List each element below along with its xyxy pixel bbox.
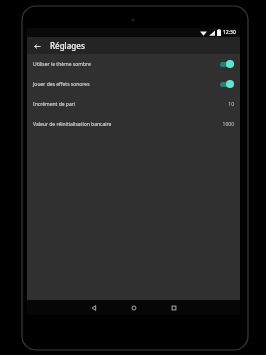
staticText: Valeur de réinitialisation bancaire: [33, 121, 222, 128]
staticText: Jouer des effets sonores: [33, 81, 220, 88]
button[interactable]: Recent apps: [154, 300, 194, 315]
button[interactable]: Jouer des effets sonores: [27, 74, 240, 94]
staticText: 10: [228, 101, 234, 108]
button[interactable]: Valeur de réinitialisation bancaire: [27, 114, 240, 134]
staticText: 1000: [222, 121, 234, 128]
staticText: Utiliser le thème sombre: [33, 61, 220, 68]
staticText: 12:30: [223, 29, 236, 36]
button[interactable]: Home: [114, 300, 154, 315]
button[interactable]: Back: [74, 300, 114, 315]
button[interactable]: Utiliser le thème sombre: [27, 54, 240, 74]
staticText: Réglages: [50, 40, 85, 51]
staticText: Incrément de pari: [33, 101, 228, 108]
button[interactable]: Back: [30, 39, 44, 53]
button[interactable]: Incrément de pari: [27, 94, 240, 114]
